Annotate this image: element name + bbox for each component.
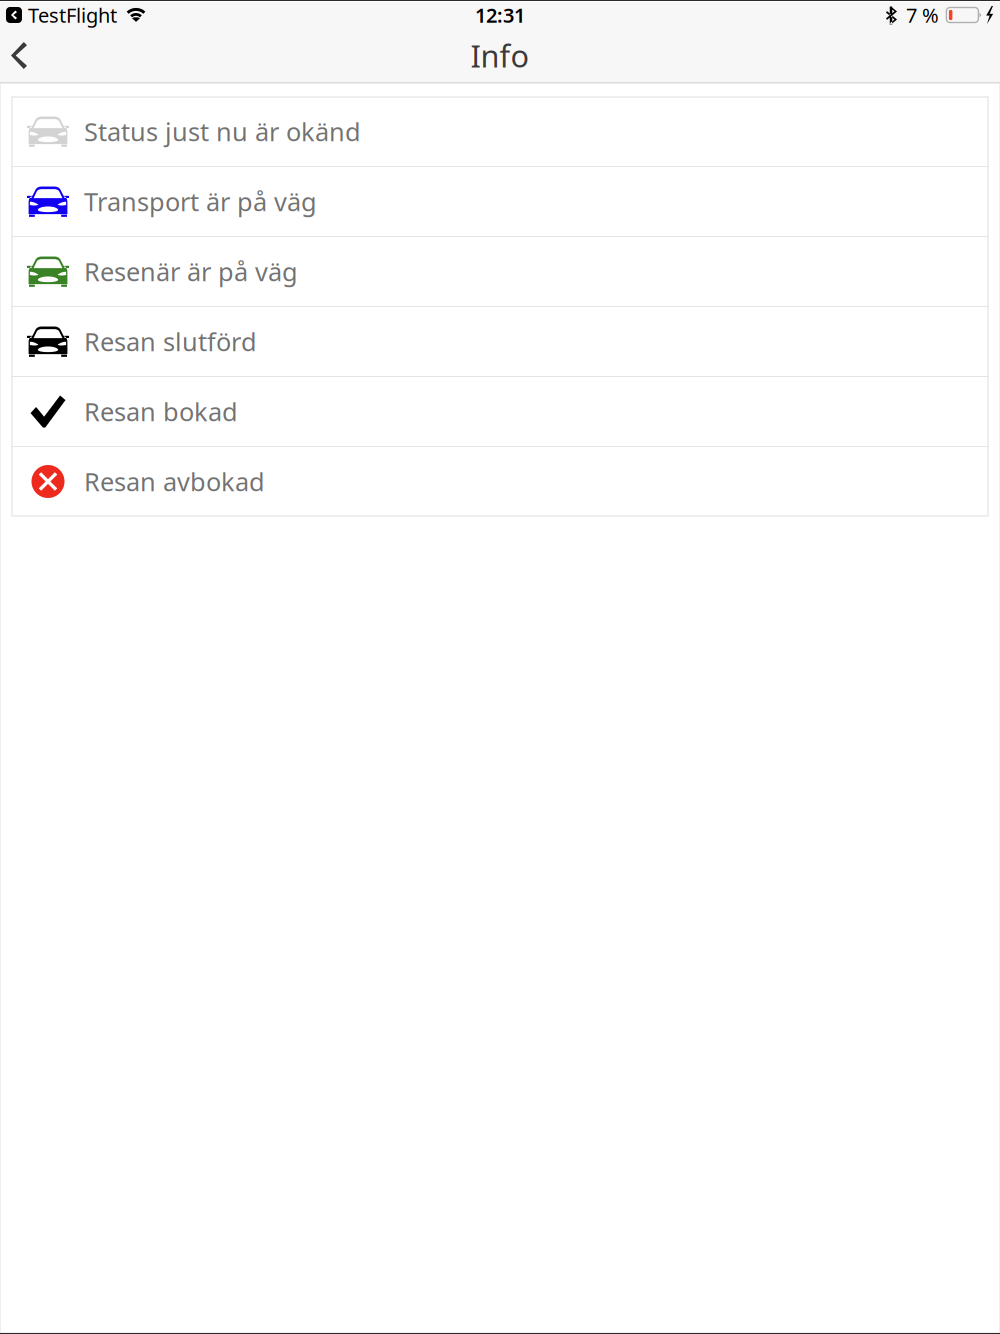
staticText: TestFlight	[28, 2, 117, 28]
button[interactable]: Resenär är på väg	[12, 237, 988, 306]
button[interactable]: Back	[0, 28, 47, 83]
staticText: Resan bokad	[84, 395, 238, 428]
staticText: Resenär är på väg	[84, 255, 298, 288]
button[interactable]: Status just nu är okänd	[12, 97, 988, 166]
staticText: 12:31	[475, 2, 525, 28]
staticText: Status just nu är okänd	[84, 115, 361, 148]
button[interactable]: Resan bokad	[12, 377, 988, 446]
button[interactable]: Resan slutförd	[12, 307, 988, 376]
staticText: Info	[470, 35, 529, 76]
staticText: Resan slutförd	[84, 325, 257, 358]
staticText: Resan avbokad	[84, 465, 265, 498]
staticText: 7 %	[906, 2, 939, 28]
button[interactable]: Resan avbokad	[12, 447, 988, 516]
staticText: Transport är på väg	[84, 185, 317, 218]
button[interactable]: Transport är på väg	[12, 167, 988, 236]
